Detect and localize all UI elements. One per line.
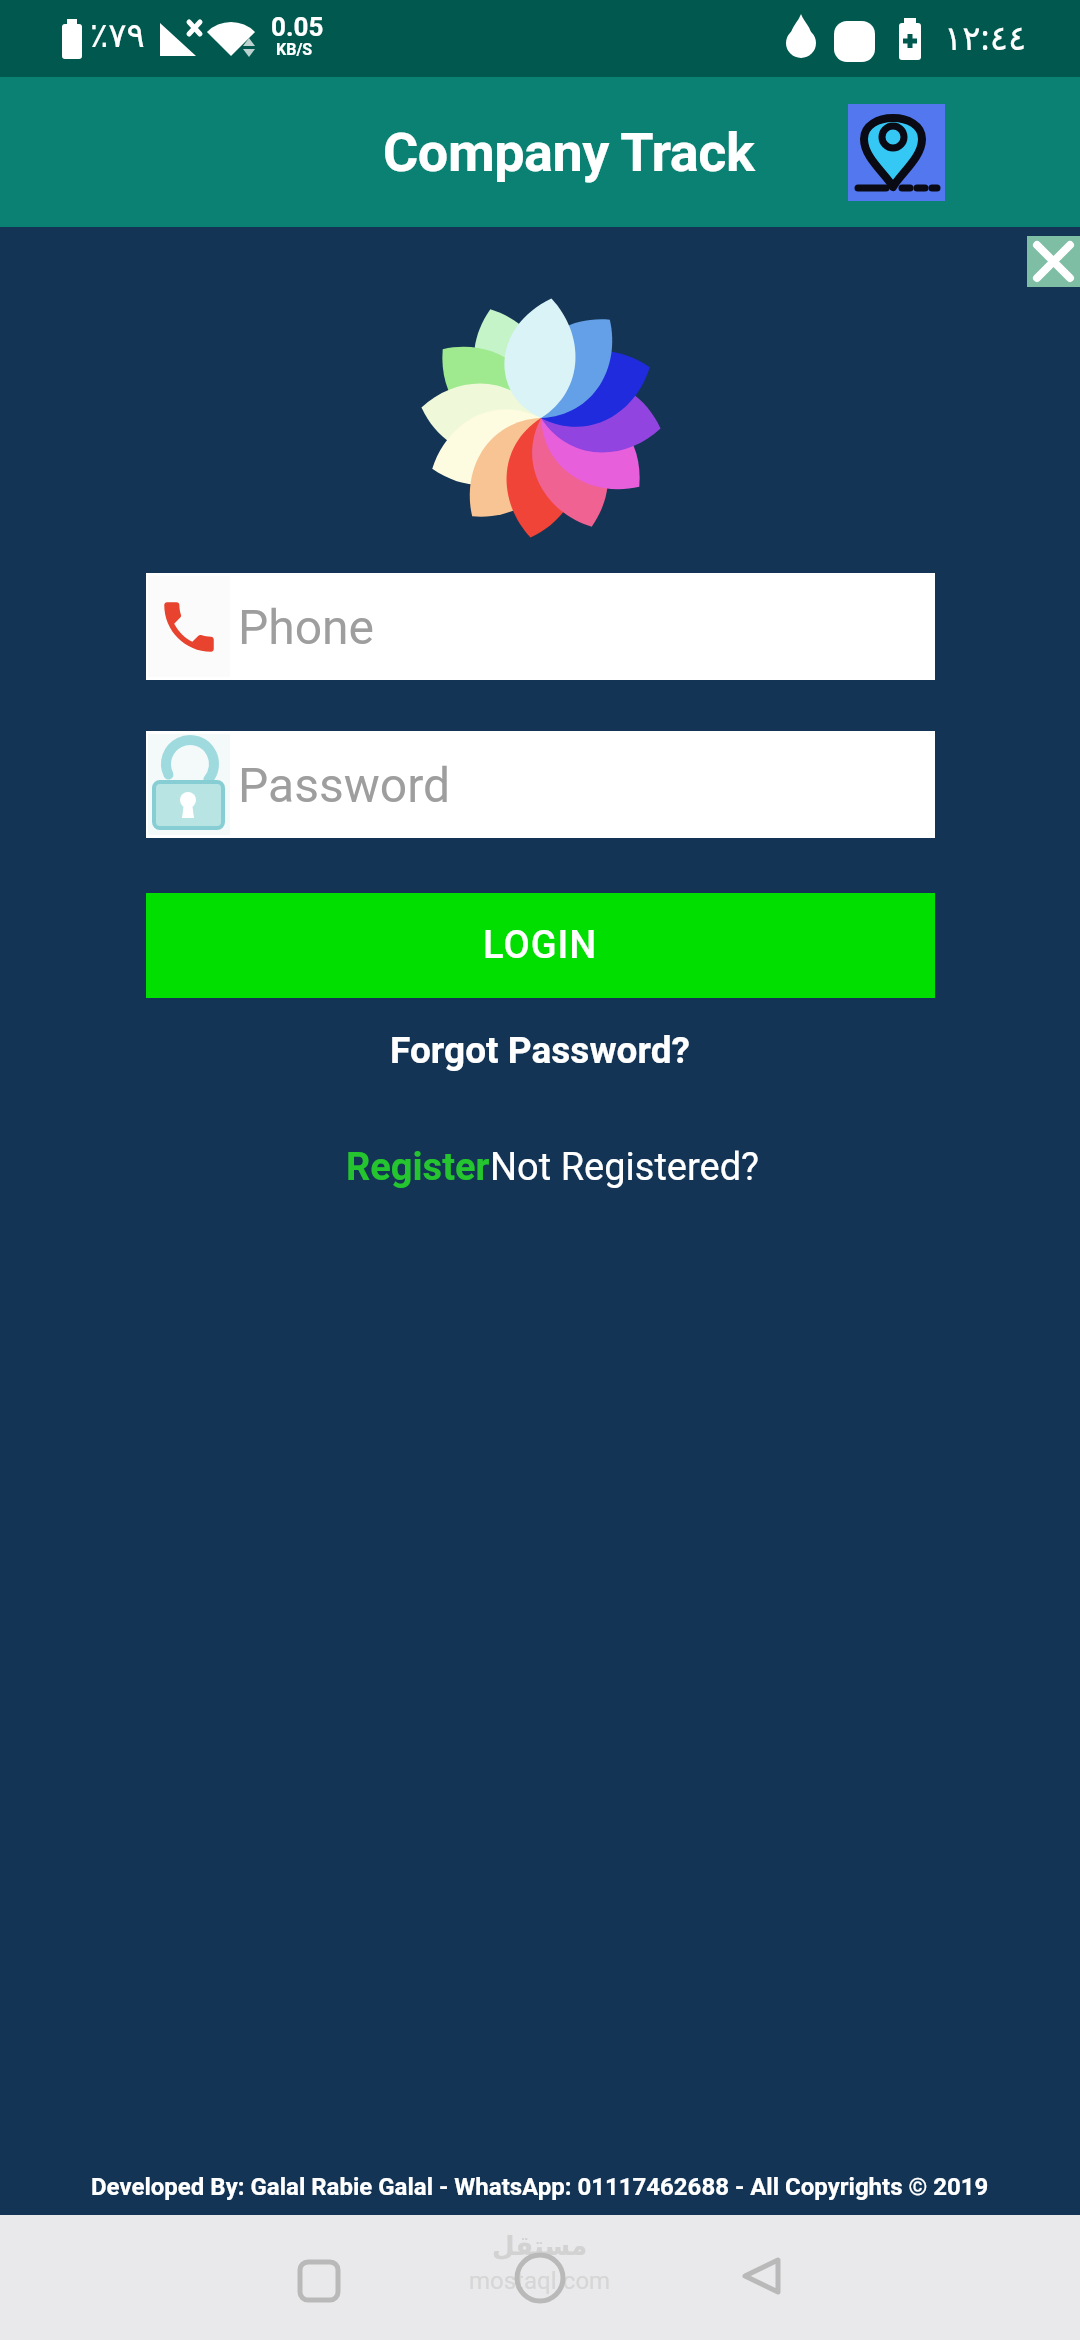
- button[interactable]: Register: [346, 1145, 760, 1190]
- button[interactable]: Phone: [146, 573, 935, 680]
- staticText: Developed By: Galal Rabie Galal - WhatsA…: [91, 2173, 989, 2201]
- staticText: ١٢:٤٤: [944, 14, 1027, 60]
- button[interactable]: [720, 2215, 1080, 2340]
- button[interactable]: [848, 104, 945, 201]
- staticText: Phone: [238, 599, 375, 655]
- button[interactable]: Forgot Password?: [390, 1029, 690, 1072]
- staticText: KB/S: [276, 40, 313, 59]
- staticText: مستقل: [492, 2231, 588, 2261]
- staticText: ٪٧٩: [90, 15, 145, 55]
- button[interactable]: LOGIN: [146, 893, 935, 998]
- staticText: Company Track: [383, 121, 755, 184]
- staticText: Register: [346, 1145, 490, 1190]
- button[interactable]: [1027, 236, 1080, 287]
- button[interactable]: [0, 2215, 360, 2340]
- button[interactable]: Password: [146, 731, 935, 838]
- staticText: mostaql.com: [469, 2267, 611, 2295]
- staticText: LOGIN: [483, 923, 598, 968]
- staticText: 0.05: [271, 12, 324, 42]
- staticText: Not Registered?: [490, 1145, 760, 1190]
- staticText: Password: [238, 757, 451, 813]
- button[interactable]: [360, 2215, 720, 2340]
